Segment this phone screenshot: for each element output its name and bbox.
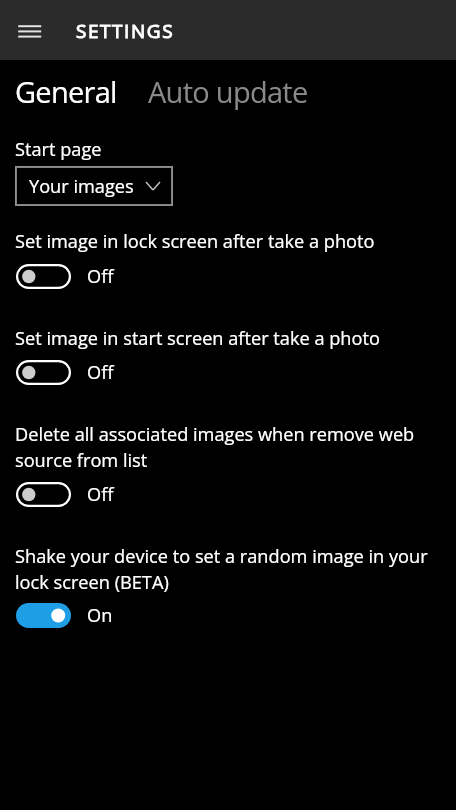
- staticText: Set image in start screen after take a p…: [15, 326, 435, 351]
- staticText: Off: [87, 360, 114, 385]
- staticText: Off: [87, 264, 114, 289]
- staticText: Your images: [29, 174, 134, 199]
- button[interactable]: Switch, off: [16, 482, 114, 507]
- staticText: General: [15, 72, 117, 111]
- button[interactable]: Switch, off: [16, 360, 114, 385]
- staticText: Set image in lock screen after take a ph…: [15, 229, 435, 254]
- staticText: Shake your device to set a random image …: [15, 544, 435, 594]
- staticText: On: [87, 603, 113, 628]
- staticText: Off: [87, 482, 114, 507]
- button[interactable]: Your images: [15, 166, 173, 206]
- button[interactable]: Auto update: [148, 72, 308, 111]
- staticText: Delete all associated images when remove…: [15, 422, 435, 472]
- staticText: Auto update: [148, 72, 308, 111]
- button[interactable]: General: [15, 72, 117, 111]
- staticText: Start page: [15, 137, 102, 162]
- button[interactable]: Menu: [8, 8, 50, 52]
- button[interactable]: Switch, on: [16, 603, 113, 628]
- button[interactable]: Switch, off: [16, 264, 114, 289]
- staticText: SETTINGS: [76, 18, 175, 44]
